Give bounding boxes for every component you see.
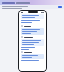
button[interactable] xyxy=(0,0,64,5)
button[interactable] xyxy=(21,54,44,59)
button[interactable] xyxy=(21,39,44,46)
other: Section icon xyxy=(21,51,23,53)
button[interactable]: Section icon xyxy=(21,51,44,53)
button[interactable]: Section icon xyxy=(21,36,44,38)
button[interactable] xyxy=(21,14,44,19)
other: Section icon xyxy=(21,25,23,27)
other: Section icon xyxy=(21,36,23,38)
button[interactable]: Get started xyxy=(58,6,62,8)
button[interactable] xyxy=(21,28,44,35)
button[interactable]: Section icon xyxy=(21,25,44,27)
